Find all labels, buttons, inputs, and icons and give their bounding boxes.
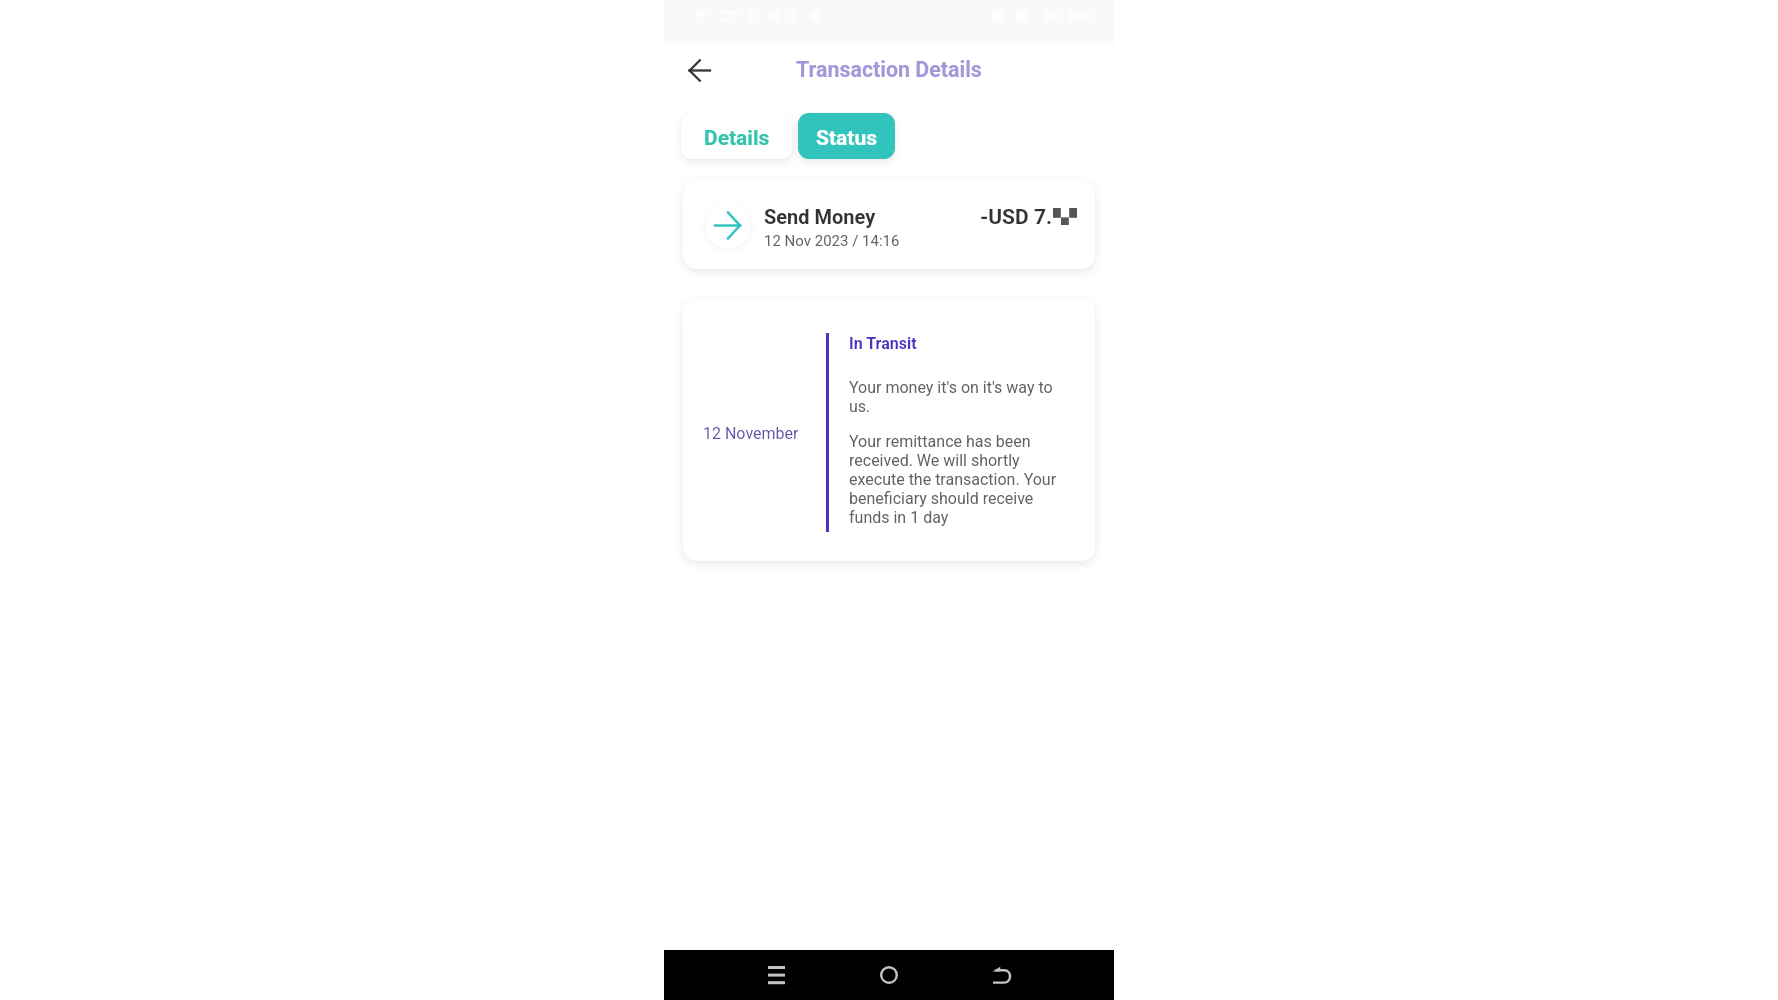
button[interactable]: Home <box>832 950 945 1000</box>
button[interactable]: Status <box>798 113 895 159</box>
staticText: -USD 7. <box>980 205 1053 230</box>
button[interactable]: Back <box>677 48 721 92</box>
staticText: Your remittance has been received. We wi… <box>849 432 1062 527</box>
button[interactable]: Recent apps <box>720 950 832 1000</box>
button[interactable]: Send Money <box>683 180 1095 269</box>
staticText: Details <box>704 126 770 151</box>
staticText: 12 November <box>703 424 799 443</box>
staticText: 12 Nov 2023 / 14:16 <box>764 232 900 250</box>
button[interactable]: Details <box>681 113 792 159</box>
staticText: Your money it's on it's way to us. <box>849 378 1062 416</box>
staticText: Status <box>816 126 877 151</box>
staticText: In Transit <box>849 334 917 353</box>
staticText: Send Money <box>764 205 876 228</box>
staticText: Transaction Details <box>796 57 982 82</box>
button[interactable]: Back <box>945 950 1058 1000</box>
